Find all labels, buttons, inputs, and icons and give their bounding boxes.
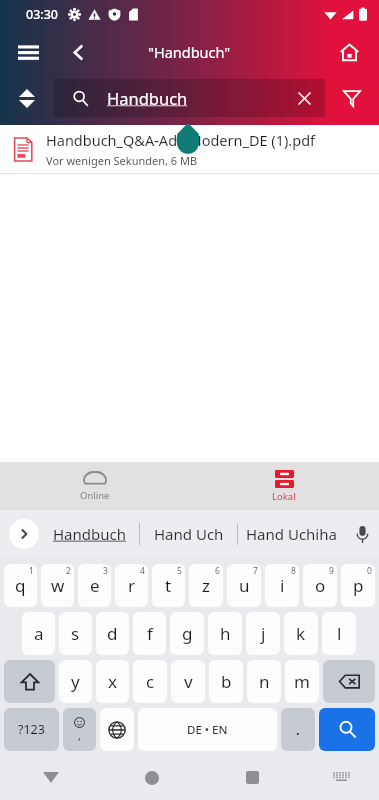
button[interactable]: Home xyxy=(101,755,202,800)
staticText: 7 xyxy=(253,565,258,577)
button[interactable]: r xyxy=(115,564,148,607)
staticText: 6 xyxy=(215,565,220,577)
button[interactable]: t xyxy=(152,564,185,607)
staticText: s xyxy=(71,622,80,645)
staticText: i xyxy=(280,574,285,597)
staticText: Hand Uchiha xyxy=(246,524,337,544)
button[interactable]: Hide keyboard xyxy=(303,755,379,800)
staticText: q xyxy=(15,574,26,597)
button[interactable]: k xyxy=(284,612,318,655)
button[interactable]: j xyxy=(246,612,280,655)
staticText: DE • EN xyxy=(187,722,228,738)
staticText: 2 xyxy=(66,565,71,577)
staticText: y xyxy=(71,670,80,693)
button[interactable]: o xyxy=(303,564,337,607)
staticText: z xyxy=(202,574,210,597)
button[interactable]: v xyxy=(171,660,205,703)
staticText: Handbuch xyxy=(107,87,285,109)
staticText: m xyxy=(294,670,310,693)
button[interactable]: n xyxy=(247,660,281,703)
button[interactable]: u xyxy=(227,564,261,607)
button[interactable]: Shift xyxy=(4,660,55,703)
staticText: v xyxy=(184,670,193,693)
staticText: Lokal xyxy=(272,490,296,503)
button[interactable]: Emoji xyxy=(63,708,96,751)
button[interactable]: l xyxy=(322,612,356,655)
staticText: x xyxy=(108,670,117,693)
staticText: Online xyxy=(80,489,110,502)
staticText: f xyxy=(147,622,153,645)
button[interactable]: Hand Uchiha xyxy=(238,510,345,558)
staticText: n xyxy=(259,670,270,693)
staticText: 5 xyxy=(177,565,182,577)
button[interactable]: a xyxy=(22,612,55,655)
button[interactable]: Filter xyxy=(325,75,379,121)
button[interactable]: i xyxy=(265,564,299,607)
staticText: g xyxy=(182,622,193,645)
button[interactable]: h xyxy=(208,612,242,655)
button[interactable]: Handbuch_Q&A-Ad…Modern_DE (1).pdf xyxy=(0,125,379,174)
staticText: d xyxy=(107,622,118,645)
button[interactable]: Recent apps xyxy=(202,755,303,800)
button[interactable]: More suggestions xyxy=(9,519,39,549)
button[interactable]: Change language xyxy=(100,708,134,751)
staticText: w xyxy=(51,574,65,597)
staticText: h xyxy=(220,622,231,645)
button[interactable]: Backspace xyxy=(323,660,375,703)
button[interactable]: w xyxy=(41,564,74,607)
staticText: Handbuch_Q&A-Ad…Modern_DE (1).pdf xyxy=(46,130,316,150)
button[interactable]: Handbuch xyxy=(39,510,139,558)
button[interactable]: Search xyxy=(319,708,375,751)
button[interactable]: Sort xyxy=(0,75,54,121)
button[interactable]: Home xyxy=(327,30,371,74)
staticText: l xyxy=(337,622,342,645)
staticText: o xyxy=(315,574,326,597)
button[interactable]: e xyxy=(78,564,111,607)
staticText: 3 xyxy=(103,565,108,577)
button[interactable]: q xyxy=(4,564,37,607)
staticText: e xyxy=(90,574,100,597)
button[interactable]: Symbols xyxy=(4,708,59,751)
button[interactable]: b xyxy=(209,660,243,703)
staticText: b xyxy=(221,670,232,693)
button[interactable]: p xyxy=(341,564,375,607)
button[interactable]: s xyxy=(59,612,92,655)
button[interactable]: y xyxy=(59,660,92,703)
staticText: Vor wenigen Sekunden, 6 MB xyxy=(46,153,198,168)
button[interactable]: Period xyxy=(281,708,315,751)
staticText: t xyxy=(165,574,172,597)
button[interactable]: Clear search xyxy=(285,79,323,117)
button[interactable]: Voice input xyxy=(345,510,379,558)
button[interactable]: Online xyxy=(0,462,189,510)
button[interactable]: c xyxy=(133,660,167,703)
button[interactable]: d xyxy=(96,612,129,655)
button[interactable]: z xyxy=(189,564,223,607)
staticText: , xyxy=(78,728,81,743)
staticText: Hand Uch xyxy=(154,524,224,544)
button[interactable]: g xyxy=(170,612,204,655)
button[interactable]: Hand Uch xyxy=(140,510,237,558)
button[interactable]: Back xyxy=(0,755,101,800)
staticText: 8 xyxy=(291,565,296,577)
button[interactable]: f xyxy=(133,612,166,655)
staticText: . xyxy=(296,721,300,739)
staticText: 03:30 xyxy=(26,6,59,23)
staticText: 9 xyxy=(329,565,334,577)
button[interactable]: Lokal xyxy=(189,462,379,510)
staticText: 1 xyxy=(29,565,34,577)
staticText: r xyxy=(128,574,136,597)
button[interactable]: DE • EN xyxy=(138,708,277,751)
button[interactable]: Back xyxy=(56,30,100,74)
staticText: "Handbuch" xyxy=(148,42,231,62)
staticText: 0 xyxy=(367,565,372,577)
button[interactable]: x xyxy=(96,660,129,703)
staticText: ?123 xyxy=(18,721,45,738)
button[interactable]: m xyxy=(285,660,319,703)
staticText: Handbuch xyxy=(53,524,126,544)
staticText: c xyxy=(146,670,155,693)
staticText: p xyxy=(353,574,364,597)
staticText: a xyxy=(34,622,44,645)
staticText: u xyxy=(239,574,250,597)
staticText: j xyxy=(261,622,266,645)
button[interactable]: Menu xyxy=(6,30,50,74)
